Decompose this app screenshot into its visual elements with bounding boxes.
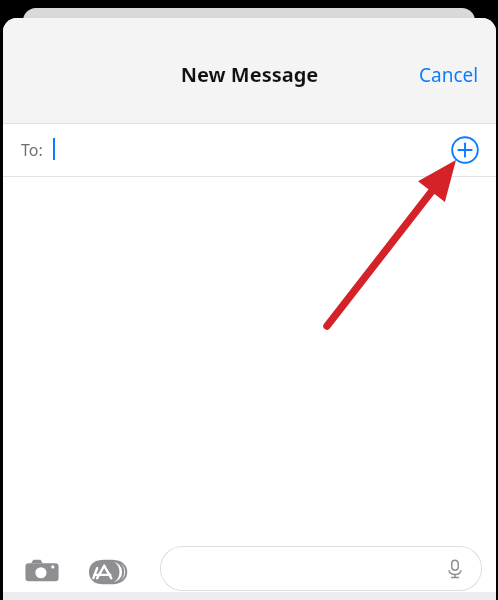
button[interactable]: Dictate — [438, 552, 472, 586]
button[interactable]: App Store — [84, 548, 132, 596]
button[interactable]: Camera — [18, 548, 66, 596]
button[interactable]: Dictate — [160, 546, 482, 591]
staticText: To: — [21, 139, 43, 161]
button[interactable]: Add contact — [446, 131, 484, 169]
staticText: New Message — [3, 61, 496, 91]
staticText: Cancel — [419, 62, 479, 88]
button[interactable]: Cancel — [408, 58, 490, 92]
button[interactable]: To: — [3, 124, 496, 176]
